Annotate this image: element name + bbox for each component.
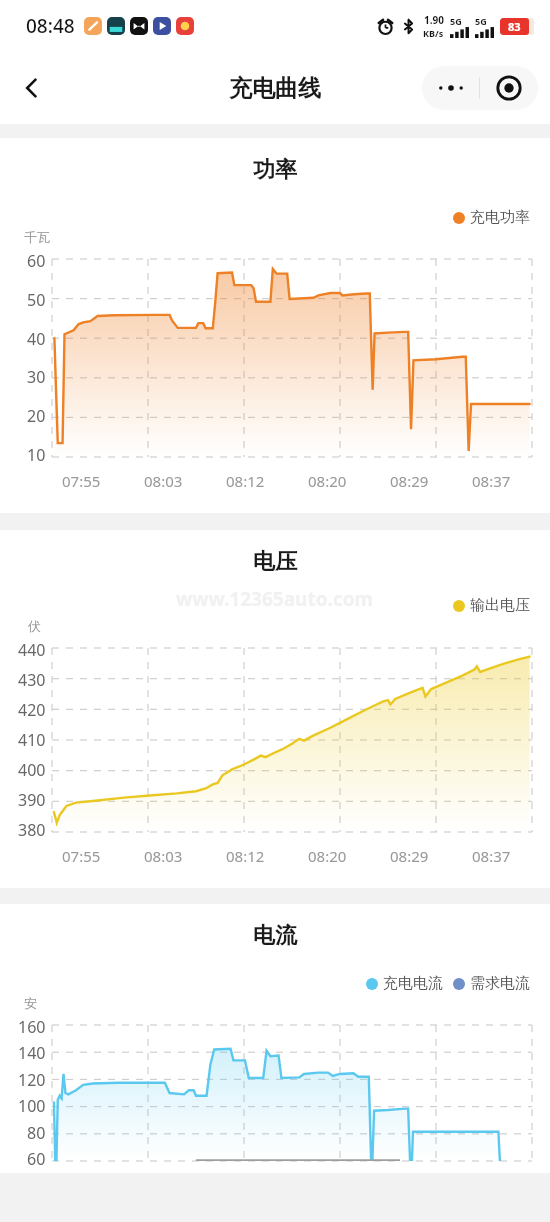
button[interactable]: 需求电流: [453, 974, 530, 993]
staticText: 20: [27, 405, 46, 427]
staticText: KB/s: [423, 27, 444, 39]
staticText: 40: [27, 328, 46, 350]
staticText: 07:55: [62, 846, 101, 866]
staticText: 功率: [253, 156, 297, 184]
button[interactable]: Back: [8, 64, 56, 112]
staticText: 08:12: [226, 846, 265, 866]
staticText: 08:37: [472, 846, 511, 866]
staticText: 410: [18, 729, 46, 751]
staticText: 08:03: [144, 471, 183, 491]
staticText: www.12365auto.com: [176, 586, 374, 612]
staticText: 充电曲线: [229, 74, 321, 103]
staticText: 10: [27, 444, 46, 466]
staticText: 08:48: [26, 13, 75, 39]
staticText: 390: [18, 789, 46, 811]
staticText: 电压: [253, 548, 297, 576]
staticText: 5G: [475, 15, 487, 27]
staticText: 充电功率: [470, 208, 530, 227]
staticText: 安: [24, 995, 37, 1011]
staticText: 400: [18, 759, 46, 781]
staticText: 5G: [450, 15, 462, 27]
staticText: 30: [27, 366, 46, 388]
staticText: 08:12: [226, 471, 265, 491]
staticText: 140: [18, 1042, 46, 1064]
staticText: 电流: [253, 922, 297, 950]
staticText: 伏: [28, 618, 41, 634]
staticText: 440: [18, 639, 46, 661]
staticText: 430: [18, 669, 46, 691]
button[interactable]: Locate: [480, 66, 538, 110]
staticText: 60: [27, 1148, 46, 1170]
staticText: 420: [18, 699, 46, 721]
button[interactable]: 充电功率: [453, 208, 530, 227]
button[interactable]: More options: [422, 66, 479, 110]
button[interactable]: 充电电流: [366, 974, 443, 993]
staticText: 输出电压: [470, 596, 530, 615]
staticText: 08:37: [472, 471, 511, 491]
staticText: 08:20: [308, 846, 347, 866]
staticText: 50: [27, 289, 46, 311]
staticText: 08:29: [390, 846, 429, 866]
staticText: 07:55: [62, 471, 101, 491]
staticText: 120: [18, 1069, 46, 1091]
staticText: 1.90: [424, 13, 444, 27]
staticText: 千瓦: [24, 229, 50, 245]
staticText: 08:20: [308, 471, 347, 491]
staticText: 需求电流: [470, 974, 530, 993]
staticText: 60: [27, 250, 46, 272]
staticText: 83: [508, 19, 521, 34]
staticText: 充电电流: [383, 974, 443, 993]
button[interactable]: 输出电压: [453, 596, 530, 615]
staticText: 80: [27, 1122, 46, 1144]
staticText: 08:29: [390, 471, 429, 491]
staticText: 08:03: [144, 846, 183, 866]
staticText: 160: [18, 1016, 46, 1038]
staticText: 380: [18, 819, 46, 841]
staticText: 100: [18, 1095, 46, 1117]
